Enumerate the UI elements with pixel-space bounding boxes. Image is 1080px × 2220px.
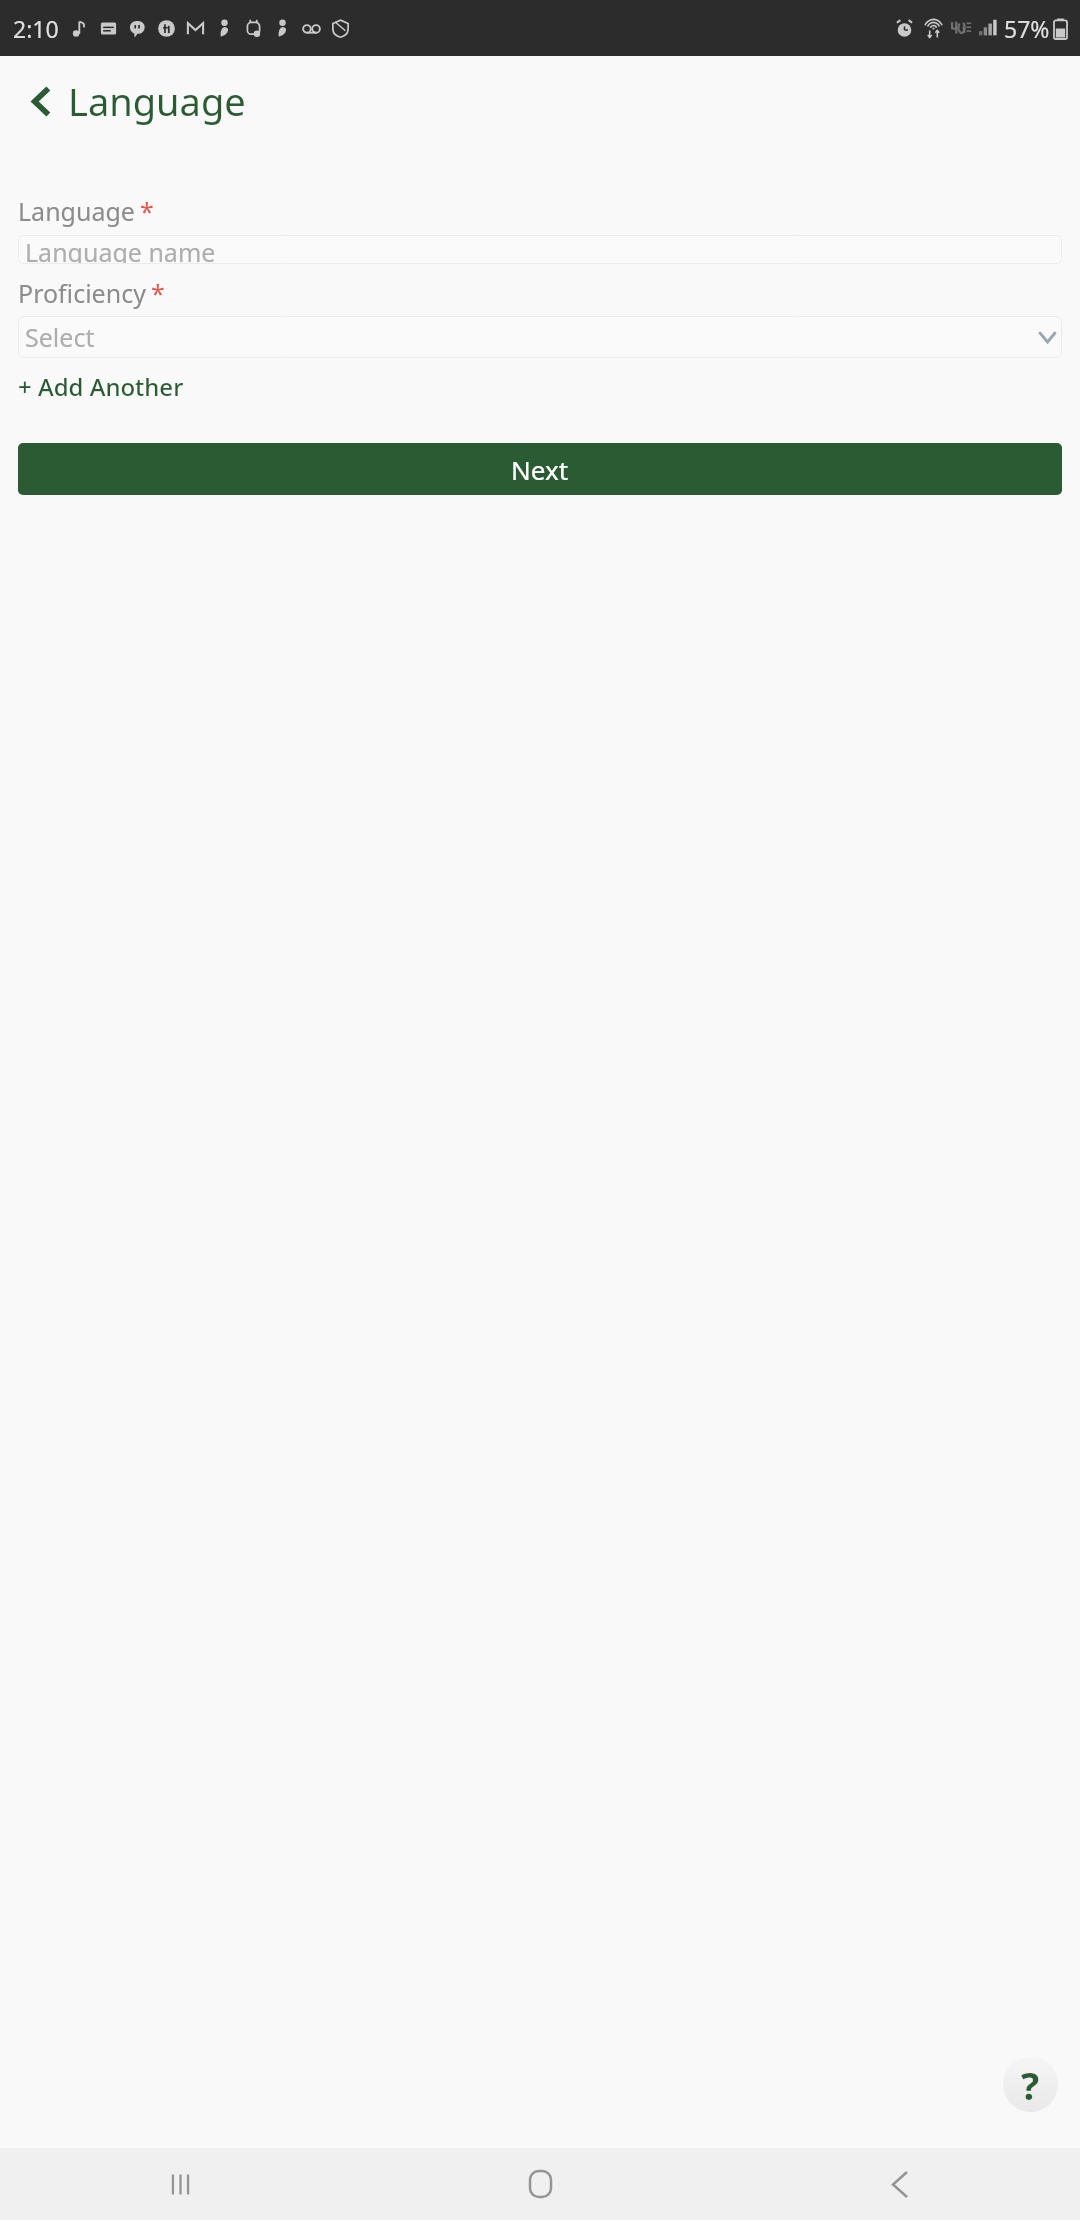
staticText: 57% — [1004, 13, 1050, 44]
staticText: Proficiency — [18, 276, 146, 310]
staticText: + Add Another — [18, 370, 184, 403]
staticText: * — [151, 276, 165, 310]
button[interactable]: Back — [16, 70, 66, 132]
button[interactable]: Home — [360, 2148, 720, 2220]
button[interactable]: Next — [18, 443, 1062, 495]
staticText: * — [140, 194, 154, 228]
button[interactable]: Back — [720, 2148, 1080, 2220]
button[interactable]: Select — [18, 316, 1062, 358]
button[interactable]: Recents — [0, 2148, 360, 2220]
staticText: 2:10 — [13, 13, 59, 44]
staticText: Language — [68, 75, 246, 127]
staticText: ? — [1021, 2059, 1040, 2111]
staticText: Language name — [25, 235, 216, 264]
button[interactable]: Language name — [18, 235, 1062, 264]
button[interactable]: + Add Another — [18, 367, 184, 406]
staticText: Next — [511, 452, 569, 487]
staticText: Language — [18, 194, 135, 228]
button[interactable]: Help — [1003, 2057, 1058, 2112]
staticText: Select — [25, 320, 95, 354]
